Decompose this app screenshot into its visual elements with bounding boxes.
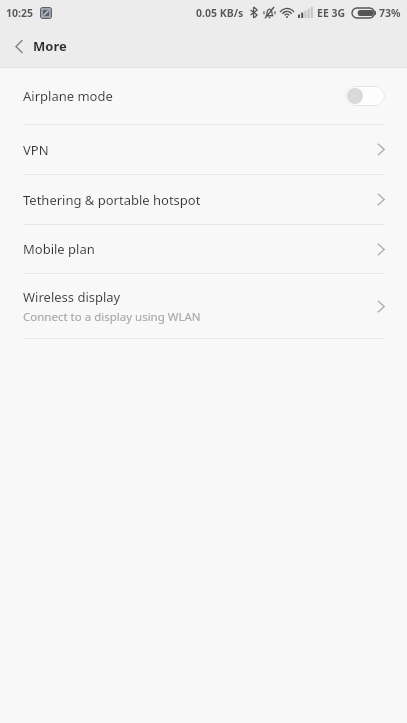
- staticText: Mobile plan: [23, 240, 95, 258]
- staticText: Wireless display: [23, 288, 121, 306]
- button[interactable]: Wireless display: [0, 274, 407, 338]
- staticText: Tethering & portable hotspot: [23, 191, 201, 209]
- button[interactable]: Mobile plan: [0, 225, 407, 273]
- staticText: More: [33, 37, 67, 55]
- staticText: 0.05 KB/s: [196, 6, 244, 20]
- button[interactable]: Airplane mode: [0, 68, 407, 124]
- staticText: 10:25: [6, 6, 33, 20]
- staticText: Connect to a display using WLAN: [23, 309, 201, 325]
- button[interactable]: [7, 30, 31, 63]
- staticText: Airplane mode: [23, 87, 113, 105]
- staticText: VPN: [23, 141, 49, 159]
- button[interactable]: [345, 86, 385, 106]
- button[interactable]: VPN: [0, 125, 407, 174]
- button[interactable]: Tethering & portable hotspot: [0, 175, 407, 224]
- staticText: 73%: [379, 6, 401, 20]
- staticText: EE 3G: [317, 6, 346, 20]
